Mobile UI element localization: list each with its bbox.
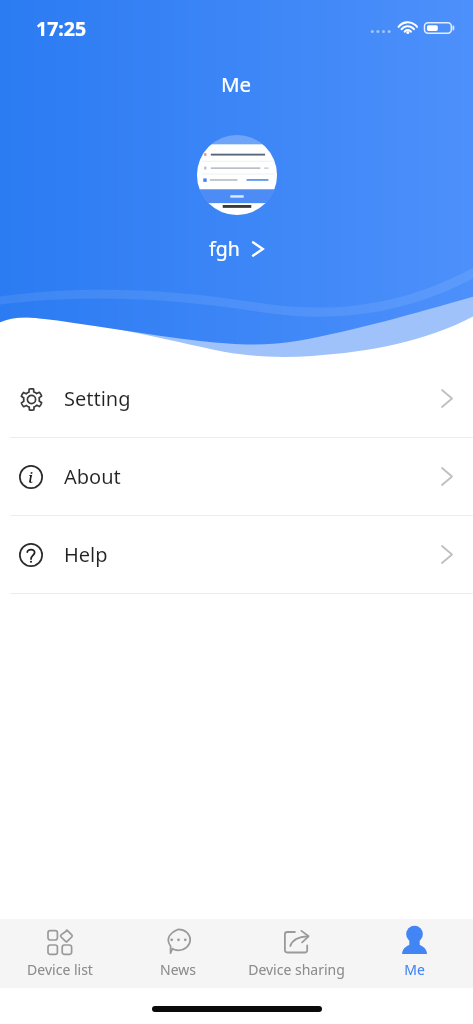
button[interactable]: News <box>119 919 237 988</box>
staticText: 17:25 <box>36 15 87 42</box>
staticText: fgh <box>209 235 240 262</box>
staticText: News <box>160 960 196 979</box>
button[interactable]: fgh <box>209 235 264 262</box>
button[interactable]: Profile photo <box>197 135 277 215</box>
staticText: i <box>28 467 34 487</box>
button[interactable]: i <box>0 438 473 515</box>
staticText: Device sharing <box>248 960 345 979</box>
staticText: Device list <box>27 960 93 979</box>
button[interactable]: Device sharing <box>237 919 355 988</box>
button[interactable]: Help <box>0 516 473 593</box>
button[interactable]: Setting <box>0 360 473 437</box>
staticText: About <box>64 463 121 490</box>
button[interactable]: Me <box>355 919 473 988</box>
staticText: Me <box>221 70 252 98</box>
staticText: Me <box>404 960 425 979</box>
staticText: Help <box>64 541 108 568</box>
staticText: Setting <box>64 385 131 412</box>
button[interactable]: Device list <box>0 919 119 988</box>
